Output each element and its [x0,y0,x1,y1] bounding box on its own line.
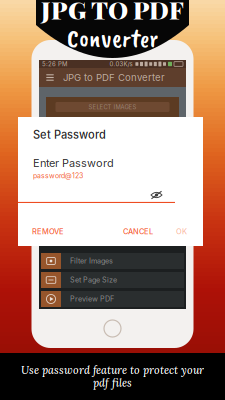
staticText: SELECT IMAGES [88,103,136,111]
staticText: Use password feature to protect your [21,363,204,377]
staticText: Preview PDF [70,295,114,303]
staticText: Set Password [33,128,106,141]
button[interactable]: CANCEL [120,223,156,240]
staticText: 5:26 PM [42,60,67,68]
button[interactable]: Set Page Size [41,272,184,288]
staticText: Converter [67,21,158,54]
staticText: 0.03K/s [109,60,132,68]
staticText: password@123 [33,172,83,180]
button[interactable]: OK [173,223,190,240]
staticText: OK [176,227,187,236]
staticText: JPG to PDF Converter [63,72,165,83]
staticText: CANCEL [123,227,153,236]
button[interactable]: Preview PDF [41,291,184,307]
staticText: JPG TO PDF [41,0,184,25]
button[interactable]: Show password [150,190,175,203]
staticText: Enter Password [33,156,114,170]
button[interactable]: Filter Images [41,253,184,269]
staticText: pdf files [93,376,132,390]
staticText: Set Page Size [70,276,117,284]
staticText: Filter Images [70,257,113,265]
button[interactable]: REMOVE [29,223,67,240]
button[interactable]: Menu [43,70,57,84]
staticText: REMOVE [32,227,64,236]
